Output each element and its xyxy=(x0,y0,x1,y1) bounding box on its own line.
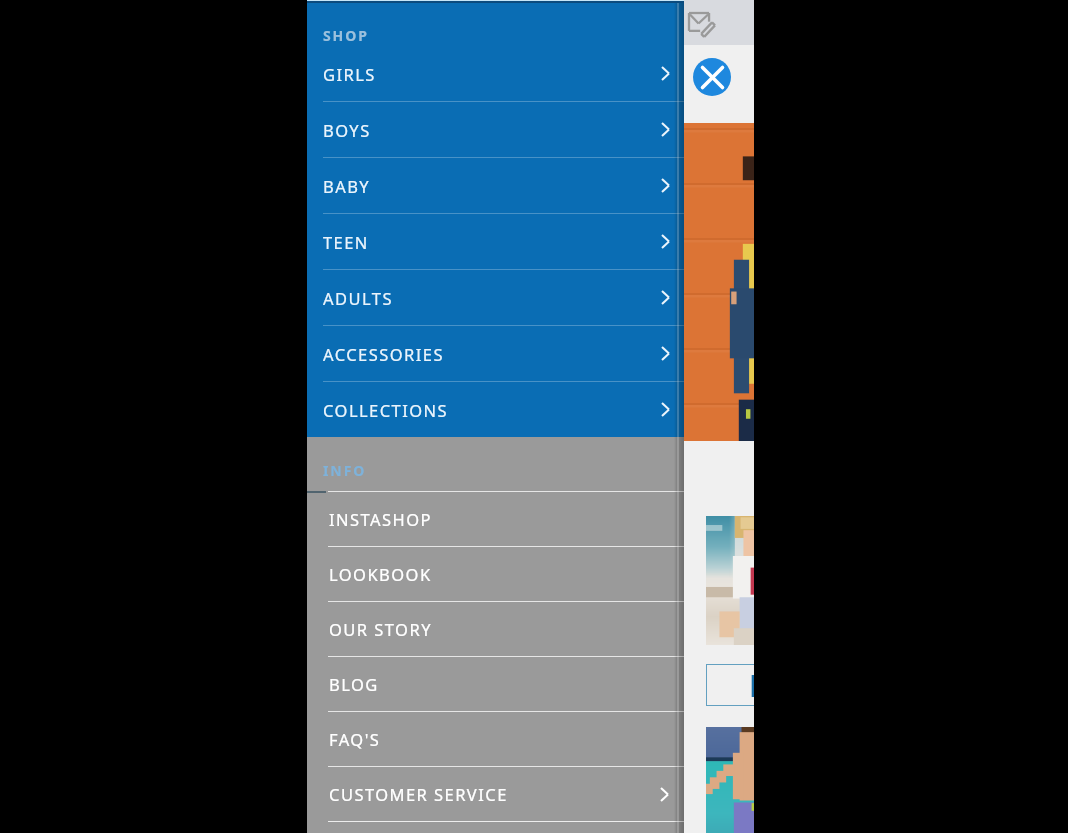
button[interactable]: ACCESSORIES xyxy=(307,326,684,382)
staticText: BLOG xyxy=(329,673,379,695)
staticText: CUSTOMER SERVICE xyxy=(329,783,508,805)
staticText: ADULTS xyxy=(323,287,393,309)
button[interactable]: BABY xyxy=(307,158,684,214)
button[interactable]: BLOG xyxy=(307,656,684,711)
staticText: COLLECTIONS xyxy=(323,399,449,421)
button[interactable]: LOOKBOOK xyxy=(307,546,684,601)
staticText: FAQ'S xyxy=(329,728,381,750)
staticText: INFO xyxy=(323,461,367,480)
button[interactable] xyxy=(706,516,754,645)
button[interactable]: GIRLS xyxy=(307,46,684,102)
button[interactable]: INSTASHOP xyxy=(307,491,684,546)
staticText: LOOKBOOK xyxy=(329,563,432,585)
button[interactable]: OUR STORY xyxy=(307,601,684,656)
button[interactable]: Compose message xyxy=(679,1,723,45)
button[interactable] xyxy=(706,727,754,833)
staticText: GIRLS xyxy=(323,63,376,85)
staticText: OUR STORY xyxy=(329,618,432,640)
staticText: BABY xyxy=(323,175,371,197)
button[interactable]: ADULTS xyxy=(307,270,684,326)
button[interactable]: Close menu xyxy=(689,54,735,100)
staticText: ACCESSORIES xyxy=(323,343,444,365)
staticText: BUY NOW xyxy=(749,664,754,706)
staticText: INSTASHOP xyxy=(329,508,432,530)
button[interactable]: COLLECTIONS xyxy=(307,382,684,438)
button[interactable]: FAQ'S xyxy=(307,711,684,766)
staticText: BOYS xyxy=(323,119,371,141)
staticText: SHOP xyxy=(323,26,369,45)
button[interactable]: BUY NOW xyxy=(706,664,754,706)
button[interactable]: BOYS xyxy=(307,102,684,158)
button[interactable]: TEEN xyxy=(307,214,684,270)
button[interactable]: CUSTOMER SERVICE xyxy=(307,766,684,821)
staticText: TEEN xyxy=(323,231,369,253)
